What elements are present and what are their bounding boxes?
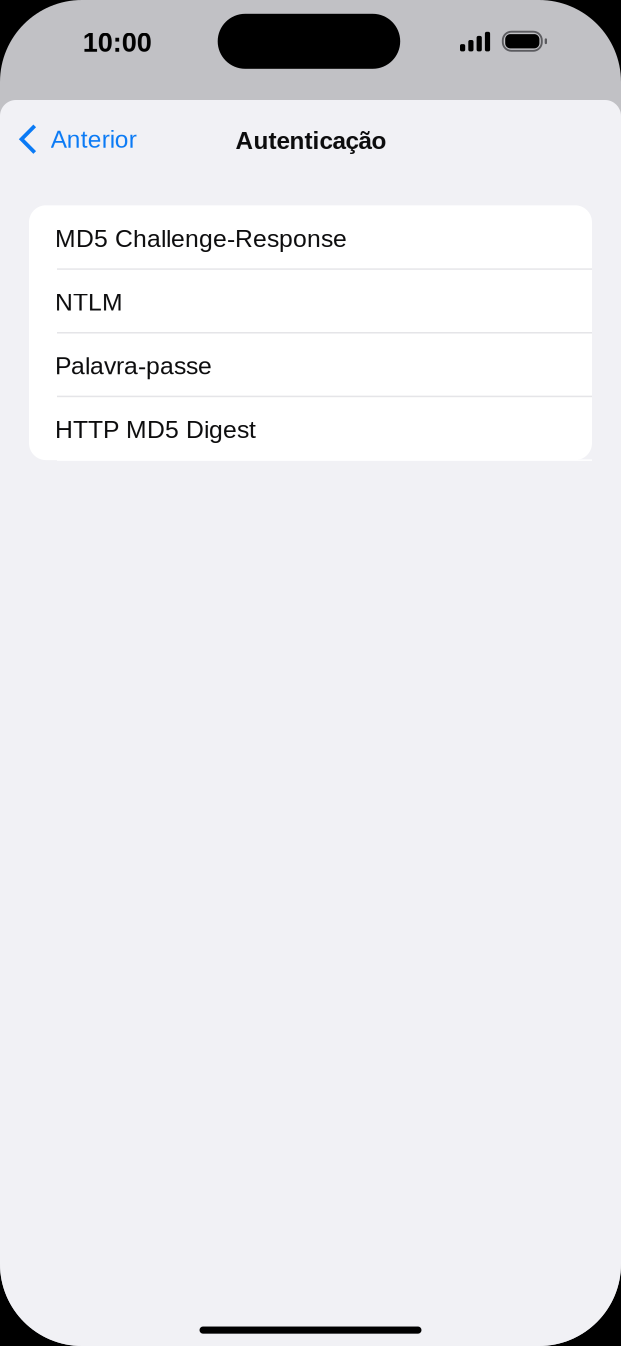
staticText: Autenticação xyxy=(235,127,386,154)
button[interactable]: NTLM xyxy=(29,269,592,333)
button[interactable]: MD5 Challenge-Response xyxy=(29,205,592,269)
button[interactable]: Palavra-passe xyxy=(29,333,592,396)
staticText: Palavra-passe xyxy=(55,352,212,380)
staticText: 10:00 xyxy=(83,27,152,57)
button[interactable]: Anterior xyxy=(0,112,153,166)
staticText: NTLM xyxy=(55,288,123,316)
staticText: HTTP MD5 Digest xyxy=(55,416,256,443)
staticText: Anterior xyxy=(51,126,137,153)
button[interactable]: HTTP MD5 Digest xyxy=(29,396,592,460)
staticText: MD5 Challenge-Response xyxy=(55,225,347,252)
